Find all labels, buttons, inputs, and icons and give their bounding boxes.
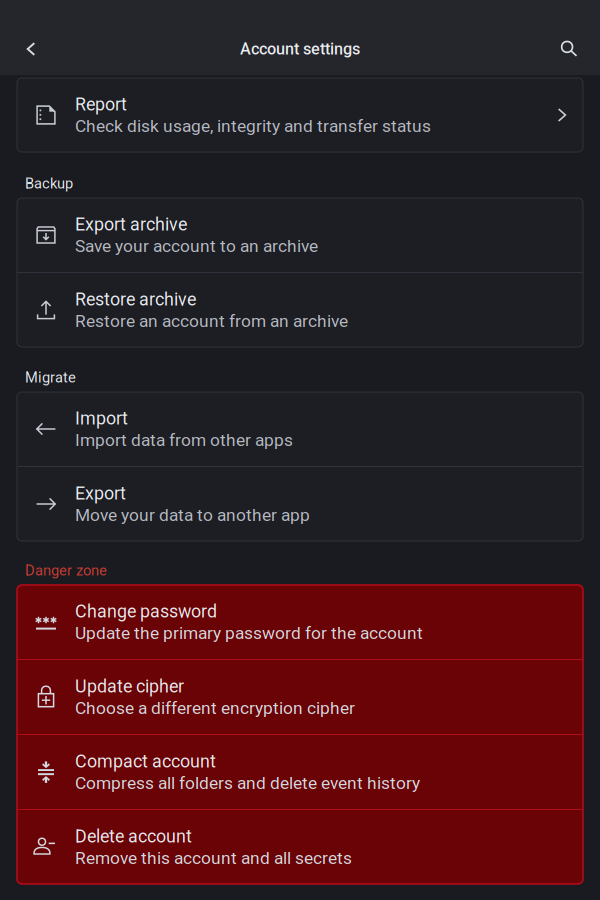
staticText: Save your account to an archive — [75, 236, 318, 256]
button[interactable]: Export — [17, 467, 583, 541]
staticText: Restore archive — [75, 289, 196, 310]
staticText: Update the primary password for the acco… — [75, 623, 423, 643]
staticText: Account settings — [240, 39, 360, 59]
staticText: Choose a different encryption cipher — [75, 698, 355, 718]
button[interactable]: Change password — [17, 585, 583, 659]
button[interactable]: Back — [9, 27, 53, 71]
staticText: Compress all folders and delete event hi… — [75, 773, 420, 793]
staticText: Backup — [25, 175, 73, 192]
button[interactable]: Export archive — [17, 198, 583, 272]
staticText: Report — [75, 94, 127, 115]
button[interactable]: Compact account — [17, 735, 583, 809]
staticText: Export — [75, 483, 126, 504]
button[interactable]: Delete account — [17, 810, 583, 884]
staticText: Change password — [75, 601, 217, 622]
button[interactable]: Search — [547, 27, 591, 71]
staticText: Update cipher — [75, 676, 184, 697]
button[interactable]: Report — [17, 78, 583, 152]
button[interactable]: Import — [17, 392, 583, 466]
button[interactable]: Restore archive — [17, 273, 583, 347]
button[interactable]: Update cipher — [17, 660, 583, 734]
staticText: Compact account — [75, 751, 216, 772]
staticText: Migrate — [25, 369, 76, 386]
staticText: Import — [75, 408, 128, 429]
staticText: Move your data to another app — [75, 505, 310, 525]
staticText: Delete account — [75, 826, 192, 847]
staticText: Remove this account and all secrets — [75, 848, 352, 868]
staticText: Check disk usage, integrity and transfer… — [75, 116, 431, 136]
staticText: Import data from other apps — [75, 430, 293, 450]
staticText: Export archive — [75, 214, 187, 235]
staticText: Restore an account from an archive — [75, 311, 348, 331]
staticText: Danger zone — [25, 562, 107, 579]
